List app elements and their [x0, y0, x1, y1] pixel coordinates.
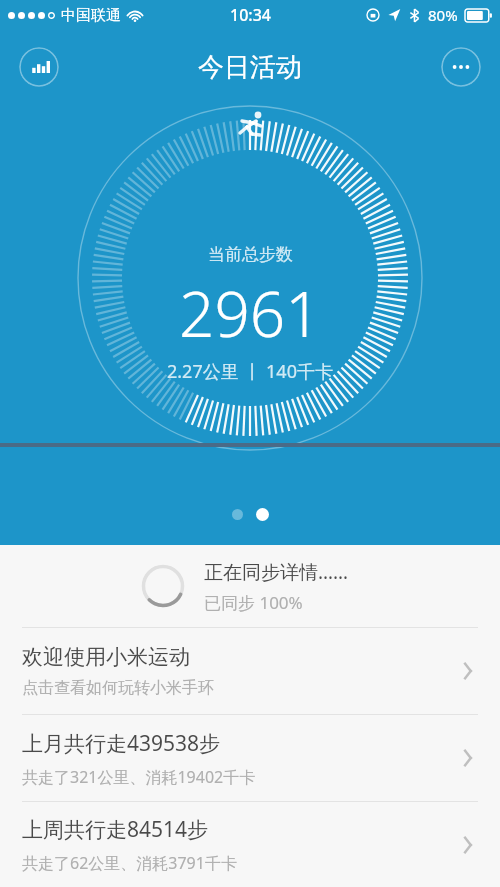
- button[interactable]: 上月共行走439538步: [0, 715, 500, 801]
- button[interactable]: 欢迎使用小米运动: [0, 628, 500, 714]
- staticText: 10:34: [230, 4, 271, 26]
- staticText: 今日活动: [198, 51, 302, 84]
- staticText: 当前总步数: [208, 244, 293, 265]
- staticText: 共走了321公里、消耗19402千卡: [22, 766, 256, 788]
- button[interactable]: Statistics: [19, 47, 59, 87]
- button[interactable]: 上周共行走84514步: [0, 802, 500, 887]
- staticText: 共走了62公里、消耗3791千卡: [22, 852, 237, 874]
- staticText: 80%: [428, 5, 458, 25]
- button[interactable]: More options: [441, 47, 481, 87]
- staticText: 2.27公里 丨 140千卡: [167, 359, 333, 384]
- staticText: 点击查看如何玩转小米手环: [22, 678, 214, 698]
- staticText: 上周共行走84514步: [22, 815, 209, 844]
- staticText: 欢迎使用小米运动: [22, 644, 190, 670]
- staticText: 中国联通: [61, 6, 121, 25]
- staticText: 上月共行走439538步: [22, 729, 221, 758]
- button[interactable]: 正在同步详情……: [0, 545, 500, 627]
- staticText: 已同步 100%: [204, 591, 303, 614]
- staticText: 正在同步详情……: [204, 559, 349, 585]
- staticText: 2961: [179, 271, 321, 355]
